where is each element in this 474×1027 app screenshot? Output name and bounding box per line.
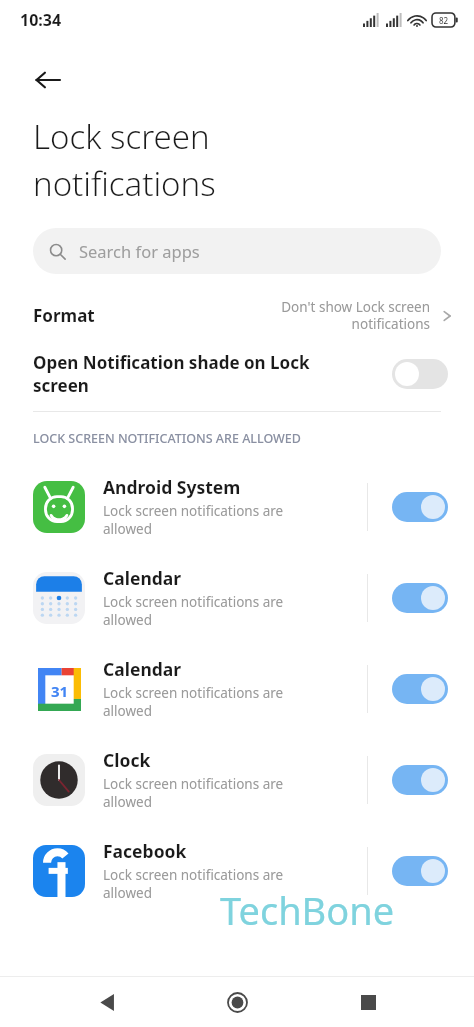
button[interactable]: Android System — [0, 461, 474, 552]
button[interactable]: Back — [24, 56, 72, 104]
button[interactable]: 31 — [0, 643, 474, 734]
staticText: Android System — [103, 475, 241, 499]
button[interactable]: Facebook — [0, 825, 474, 916]
button[interactable]: Toggle on — [392, 674, 448, 704]
staticText: 82 — [439, 15, 449, 26]
staticText: Lock screen notifications are allowed — [103, 502, 284, 538]
staticText: Lock screen notifications are allowed — [103, 684, 284, 720]
staticText: 31 — [51, 681, 69, 701]
button[interactable]: Format — [0, 292, 474, 339]
staticText: Search for apps — [79, 240, 200, 262]
staticText: 10:34 — [20, 9, 62, 31]
staticText: Lock screen notifications are allowed — [103, 866, 284, 902]
button[interactable]: Recents — [344, 978, 392, 1026]
button[interactable]: Toggle on — [392, 856, 448, 886]
button[interactable]: Toggle on — [392, 492, 448, 522]
button[interactable]: Home — [213, 978, 261, 1026]
button[interactable]: Back — [83, 978, 131, 1026]
staticText: Calendar — [103, 566, 182, 590]
button[interactable]: Calendar — [0, 552, 474, 643]
button[interactable]: Clock — [0, 734, 474, 825]
staticText: Calendar — [103, 657, 182, 681]
staticText: Don't show Lock screen notifications — [281, 298, 430, 333]
button[interactable]: Search for apps — [33, 228, 441, 274]
staticText: Open Notification shade on Lock screen — [33, 351, 382, 397]
staticText: Clock — [103, 748, 151, 772]
staticText: Lock screen notifications are allowed — [103, 775, 284, 811]
button[interactable]: Open Notification shade on Lock screen — [0, 339, 474, 397]
staticText: notifications — [33, 161, 216, 206]
staticText: Facebook — [103, 839, 187, 863]
button[interactable]: Toggle off — [392, 359, 448, 389]
staticText: TechBone — [220, 884, 395, 936]
staticText: Lock screen — [33, 114, 210, 159]
button[interactable]: Toggle on — [392, 765, 448, 795]
staticText: Format — [33, 304, 95, 327]
staticText: Lock screen notifications are allowed — [103, 593, 284, 629]
button[interactable]: Toggle on — [392, 583, 448, 613]
staticText: LOCK SCREEN NOTIFICATIONS ARE ALLOWED — [33, 430, 301, 447]
